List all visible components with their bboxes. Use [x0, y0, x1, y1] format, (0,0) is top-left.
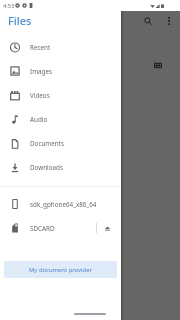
button[interactable]: SDCARD: [0, 216, 121, 240]
staticText: Documents: [30, 139, 64, 148]
button[interactable]: Videos: [0, 83, 121, 107]
button[interactable]: Recent: [0, 35, 121, 59]
button[interactable]: Audio: [0, 107, 121, 131]
staticText: sdk_gphone64_x86_64: [30, 200, 97, 209]
button[interactable]: Downloads: [0, 155, 121, 179]
staticText: Images: [30, 67, 52, 76]
staticText: 4:53: [3, 2, 15, 10]
other: Eject: [104, 225, 111, 232]
staticText: Recent: [30, 43, 51, 52]
staticText: Files: [8, 13, 32, 28]
button[interactable]: Documents: [0, 131, 121, 155]
staticText: My document provider: [29, 266, 92, 274]
button[interactable]: Grid view: [149, 56, 167, 74]
button[interactable]: More options: [160, 12, 178, 30]
staticText: SDCARD: [30, 224, 55, 233]
staticText: Downloads: [30, 163, 63, 172]
button[interactable]: Search: [139, 12, 157, 30]
staticText: Videos: [30, 91, 50, 100]
staticText: Audio: [30, 115, 48, 124]
button[interactable]: Images: [0, 59, 121, 83]
button[interactable]: My document provider: [4, 261, 117, 278]
button[interactable]: sdk_gphone64_x86_64: [0, 192, 121, 216]
